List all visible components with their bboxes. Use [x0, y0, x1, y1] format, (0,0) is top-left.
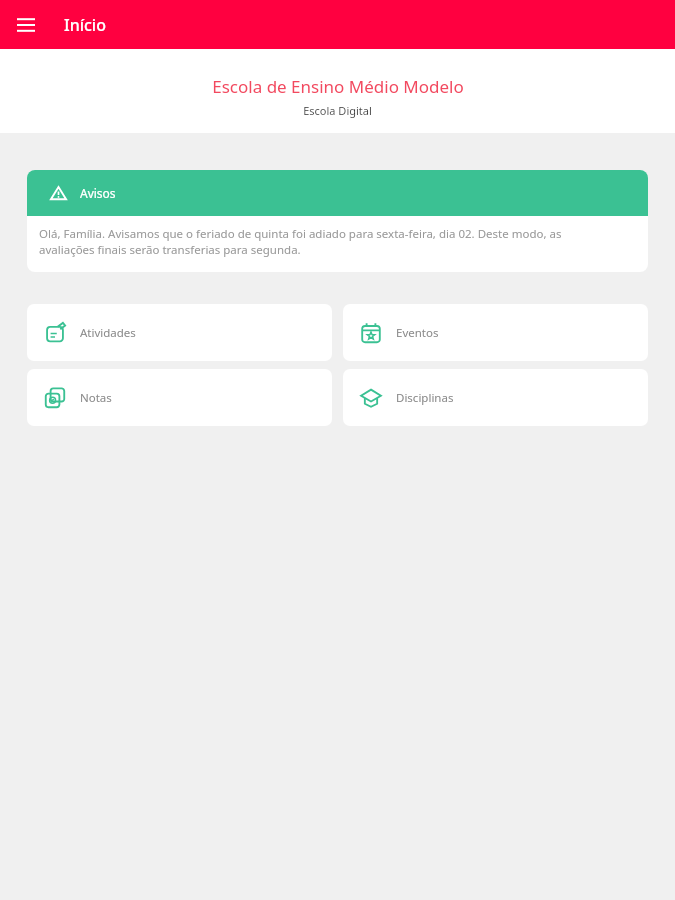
button[interactable]: Notas — [27, 369, 332, 426]
staticText: Eventos — [396, 325, 439, 341]
staticText: Escola Digital — [303, 103, 372, 118]
staticText: Avisos — [80, 185, 116, 201]
staticText: Atividades — [80, 325, 136, 341]
staticText: Início — [64, 14, 106, 36]
button[interactable]: Avisos — [27, 170, 648, 272]
button[interactable]: Menu — [10, 9, 42, 41]
staticText: Disciplinas — [396, 390, 454, 406]
staticText: Notas — [80, 390, 112, 406]
button[interactable]: Disciplinas — [343, 369, 648, 426]
staticText: avaliações finais serão transferias para… — [39, 242, 301, 258]
staticText: Olá, Família. Avisamos que o feriado de … — [39, 226, 562, 242]
button[interactable]: Eventos — [343, 304, 648, 361]
staticText: Escola de Ensino Médio Modelo — [212, 75, 464, 98]
button[interactable]: Atividades — [27, 304, 332, 361]
